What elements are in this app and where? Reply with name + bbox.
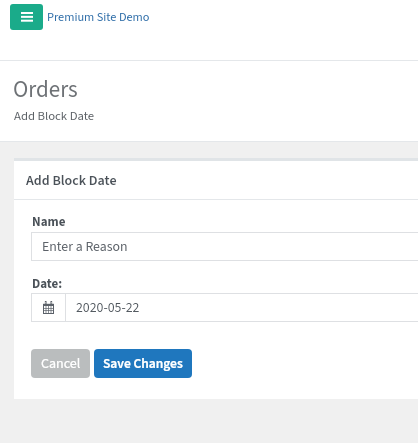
- staticText: Add Block Date: [14, 107, 95, 125]
- button[interactable]: Enter a Reason: [31, 232, 418, 261]
- staticText: Orders: [13, 73, 78, 106]
- button[interactable]: Cancel: [31, 349, 90, 378]
- button[interactable]: Choose date: [31, 293, 65, 322]
- staticText: Date:: [32, 275, 63, 294]
- button[interactable]: 2020-05-22: [65, 293, 418, 322]
- staticText: Save Changes: [103, 354, 183, 373]
- staticText: Add Block Date: [26, 171, 117, 191]
- staticText: 2020-05-22: [76, 298, 140, 318]
- staticText: Name: [32, 213, 66, 232]
- button[interactable]: Premium Site Demo: [47, 8, 150, 26]
- button[interactable]: Toggle navigation menu: [10, 4, 43, 30]
- staticText: Enter a Reason: [42, 237, 128, 257]
- staticText: Premium Site Demo: [47, 8, 150, 26]
- staticText: Cancel: [41, 354, 81, 374]
- button[interactable]: Save Changes: [94, 349, 192, 378]
